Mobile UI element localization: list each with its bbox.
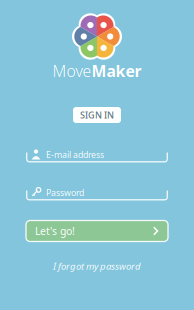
button[interactable]: Let's go! (26, 220, 168, 241)
staticText: SIGN IN (80, 109, 114, 121)
button[interactable]: I forgot my password (53, 259, 141, 273)
staticText: Move (52, 60, 91, 82)
button[interactable]: Password (26, 182, 168, 200)
staticText: I forgot my password (53, 259, 141, 273)
staticText: Let's go! (35, 224, 75, 238)
staticText: Password (46, 186, 84, 198)
button[interactable]: SIGN IN (73, 107, 121, 123)
button[interactable]: E-mail address (26, 144, 168, 162)
staticText: Maker (91, 60, 141, 82)
staticText: E-mail address (46, 148, 104, 160)
